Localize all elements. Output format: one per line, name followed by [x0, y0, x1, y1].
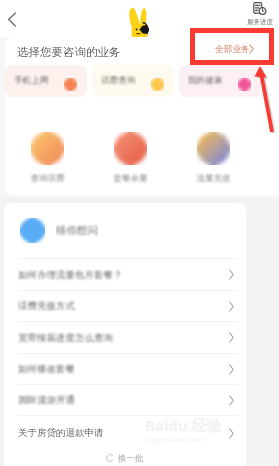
- button[interactable]: 宽带报装进度怎么查询: [4, 322, 246, 353]
- button[interactable]: 话费充值方式: [4, 291, 246, 321]
- staticText: Baidu 经验: [145, 415, 222, 435]
- staticText: 套餐余量: [92, 173, 169, 184]
- staticText: 查询话费: [9, 173, 86, 184]
- staticText: 选择您要咨询的业务: [17, 45, 121, 59]
- button[interactable]: 关于房贷的退款申请: [4, 416, 246, 450]
- button[interactable]: 话费查询: [92, 65, 174, 97]
- button[interactable]: 我的健康: [179, 65, 261, 97]
- button[interactable]: 国际漫游开通: [4, 385, 246, 415]
- staticText: 如何办理流量包月套餐？: [18, 269, 229, 281]
- staticText: 如何修改套餐: [18, 363, 229, 375]
- staticText: 流量充值: [175, 173, 252, 184]
- button[interactable]: 查询话费: [9, 121, 86, 190]
- button[interactable]: 猜你想问: [20, 203, 246, 258]
- staticText: 全部业务: [215, 44, 250, 55]
- staticText: 国际漫游开通: [18, 394, 229, 406]
- staticText: 我的健康: [188, 75, 223, 86]
- staticText: 关于房贷的退款申请: [18, 427, 229, 439]
- button[interactable]: 如何修改套餐: [4, 354, 246, 384]
- button[interactable]: 换一批: [4, 450, 246, 466]
- button[interactable]: 流量充值: [175, 121, 252, 190]
- button[interactable]: 套餐余量: [92, 121, 169, 190]
- button[interactable]: 服务进度: [243, 2, 277, 26]
- button[interactable]: 如何办理流量包月套餐？: [4, 259, 246, 290]
- staticText: 换一批: [118, 453, 144, 464]
- button[interactable]: 手机上网: [5, 65, 87, 97]
- button[interactable]: [258, 121, 279, 190]
- staticText: 服务进度: [243, 18, 277, 26]
- staticText: 话费查询: [101, 75, 136, 86]
- staticText: 猜你想问: [56, 224, 98, 237]
- button[interactable]: Back: [1, 8, 23, 30]
- staticText: jingyan.baidu.com: [145, 435, 206, 445]
- staticText: 宽带报装进度怎么查询: [18, 332, 229, 344]
- staticText: 手机上网: [14, 75, 49, 86]
- staticText: 话费充值方式: [18, 300, 229, 312]
